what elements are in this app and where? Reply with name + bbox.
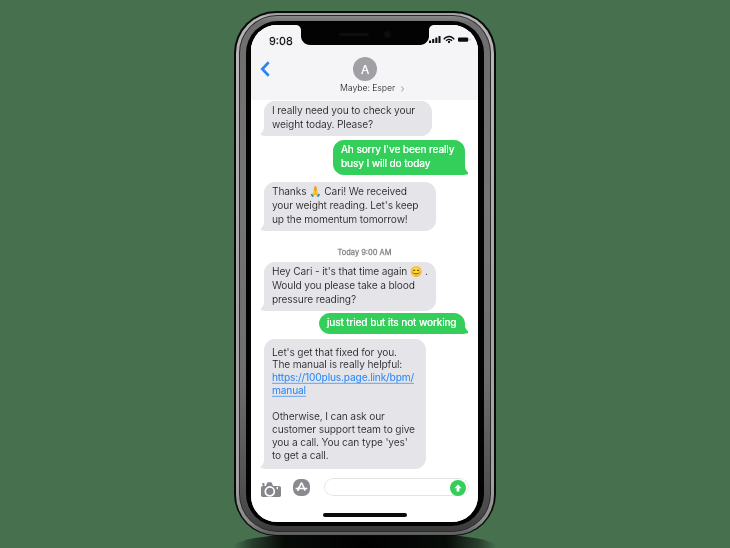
staticText: Hey Cari - it's that time again 😊 . Woul… <box>272 265 428 305</box>
button[interactable]: Ah sorry I've been really busy I will do… <box>333 140 468 175</box>
button[interactable]: just tried but its not working <box>319 313 468 334</box>
button[interactable]: App Store <box>293 479 310 496</box>
button[interactable]: Back <box>252 56 278 82</box>
staticText: just tried but its not working <box>327 316 457 328</box>
button[interactable]: I really need you to check your weight t… <box>261 101 432 136</box>
staticText: I really need you to check your weight t… <box>272 104 415 130</box>
staticText: Maybe: Esper <box>340 83 396 94</box>
button[interactable]: Let's get that fixed for you. The manual… <box>261 339 426 469</box>
staticText: A <box>361 62 370 77</box>
staticText: 9:08 <box>269 34 293 47</box>
button[interactable]: A <box>321 57 409 94</box>
staticText: Thanks 🙏 Cari! We received your weight r… <box>272 185 419 225</box>
staticText: Ah sorry I've been really busy I will do… <box>341 143 455 169</box>
button[interactable]: Send <box>450 480 466 496</box>
button[interactable]: Camera <box>259 477 283 501</box>
staticText: Let's get that fixed for you. The manual… <box>272 346 415 462</box>
staticText: Today 9:00 AM <box>251 248 478 257</box>
button[interactable]: Thanks 🙏 Cari! We received your weight r… <box>261 182 436 231</box>
button[interactable]: Hey Cari - it's that time again 😊 . Woul… <box>261 262 436 311</box>
button[interactable]: Message input <box>324 478 469 496</box>
